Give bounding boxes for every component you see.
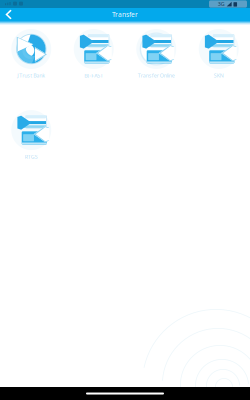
button[interactable]: Back xyxy=(0,7,18,21)
staticText: 3G xyxy=(218,0,225,8)
button[interactable]: RTGS xyxy=(0,109,62,160)
staticText: J Trust Bank xyxy=(17,72,45,79)
button[interactable]: J Trust Bank xyxy=(0,28,62,79)
staticText: RTGS xyxy=(25,153,38,160)
staticText: SKN xyxy=(214,72,224,79)
staticText: Transfer Online xyxy=(138,72,175,79)
button[interactable]: Transfer Online xyxy=(125,28,187,79)
staticText: BI-FAST xyxy=(84,72,103,79)
button[interactable]: SKN xyxy=(187,28,250,79)
button[interactable]: BI-FAST xyxy=(62,28,125,79)
staticText: Transfer xyxy=(112,10,138,19)
